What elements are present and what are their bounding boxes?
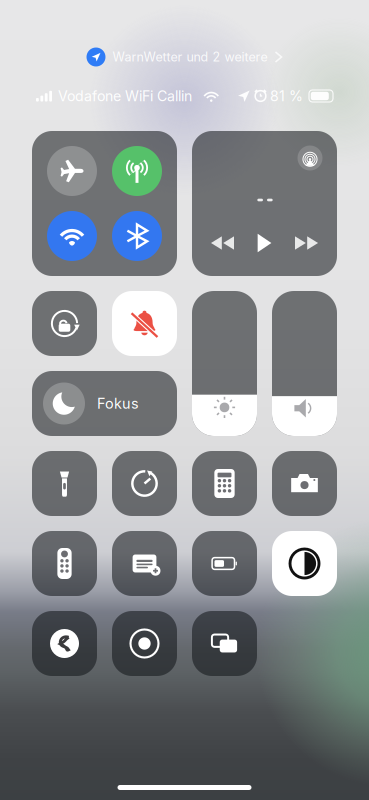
button[interactable]: Previous Track [202,228,242,258]
button[interactable]: Bluetooth [112,211,162,261]
button[interactable]: Camera [272,451,337,516]
button[interactable]: Rotation Lock [32,291,97,356]
button[interactable]: Airplane Mode [47,146,97,196]
button[interactable]: Timer [112,451,177,516]
staticText: Vodafone WiFi Callin [58,87,192,104]
button[interactable]: Low Power Mode [192,531,257,596]
button[interactable]: Wi-Fi [47,211,97,261]
button[interactable]: Quick Note [112,531,177,596]
button[interactable]: Dark Mode [272,531,337,596]
button[interactable]: Silent Mode [112,291,177,356]
button[interactable]: Next Track [286,228,326,258]
button[interactable]: WarnWetter und 2 weitere [86,45,282,69]
staticText: 81 % [270,87,303,104]
button[interactable]: Apple TV Remote [32,531,97,596]
button[interactable]: Fokus [32,371,177,436]
button[interactable]: Flashlight [32,451,97,516]
button[interactable]: Play [246,228,282,258]
button[interactable]: Screen Mirroring [192,611,257,676]
button[interactable]: Cellular Data [112,146,162,196]
button[interactable]: AirPlay [297,145,322,170]
button[interactable]: Screen Recording [112,611,177,676]
staticText: WarnWetter und 2 weitere [112,49,267,65]
button[interactable]: Shazam [32,611,97,676]
staticText: Fokus [97,395,139,412]
button[interactable]: Calculator [192,451,257,516]
